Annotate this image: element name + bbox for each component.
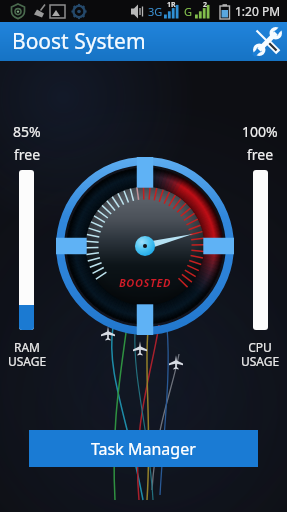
staticText: Boost System — [12, 27, 146, 56]
staticText: 1R — [167, 0, 176, 10]
staticText: 85% — [13, 122, 41, 141]
staticText: G — [184, 4, 193, 19]
staticText: free — [247, 145, 274, 164]
staticText: 3G — [148, 4, 163, 19]
staticText: 2 — [203, 0, 208, 10]
staticText: 1:20 PM — [235, 3, 281, 19]
staticText: BOOSTED — [56, 275, 234, 290]
button[interactable]: Tools — [248, 22, 287, 61]
staticText: CPU USAGE — [233, 339, 287, 370]
button[interactable]: Task Manager — [29, 430, 258, 467]
staticText: free — [14, 145, 41, 164]
staticText: Task Manager — [91, 438, 196, 460]
staticText: 100% — [242, 122, 278, 141]
staticText: RAM USAGE — [0, 339, 54, 370]
